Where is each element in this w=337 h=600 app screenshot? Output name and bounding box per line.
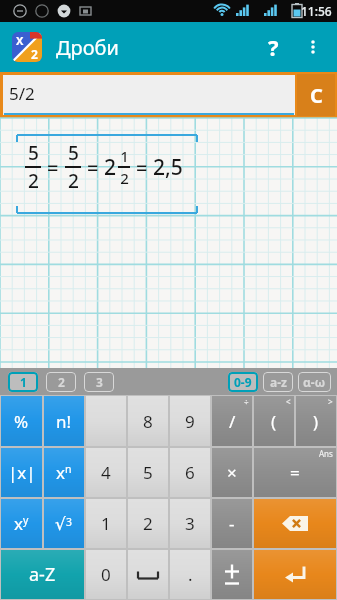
staticText: = xyxy=(87,154,99,181)
staticText: 5 xyxy=(68,140,79,166)
button[interactable]: = xyxy=(254,448,336,497)
button[interactable]: Plus minus xyxy=(212,550,252,599)
staticText: a-Z xyxy=(29,562,56,587)
staticText: ? xyxy=(268,32,279,62)
staticText: 2 xyxy=(28,168,39,194)
staticText: X xyxy=(16,33,24,48)
staticText: √ xyxy=(55,514,66,534)
button[interactable]: 1 xyxy=(86,499,126,548)
button[interactable]: 2 xyxy=(128,499,168,548)
staticText: 9 xyxy=(185,410,195,433)
button[interactable]: . xyxy=(170,550,210,599)
button[interactable]: 8 xyxy=(128,396,168,446)
button[interactable]: - xyxy=(212,499,252,548)
button[interactable] xyxy=(86,396,126,446)
button[interactable]: Backspace xyxy=(254,499,336,548)
staticText: ) xyxy=(313,410,319,433)
button[interactable]: 5/2 xyxy=(3,75,295,115)
button[interactable]: 6 xyxy=(170,448,210,497)
staticText: ( xyxy=(271,410,277,433)
staticText: 6 xyxy=(185,461,195,484)
staticText: % xyxy=(14,410,29,433)
staticText: 2 xyxy=(68,168,79,194)
staticText: 2 xyxy=(31,46,38,62)
staticText: × xyxy=(227,461,237,484)
button[interactable]: 2 xyxy=(46,372,76,392)
button[interactable]: / xyxy=(212,396,252,446)
button[interactable]: 0-9 xyxy=(228,372,258,392)
button[interactable]: Help xyxy=(253,27,293,67)
staticText: / xyxy=(229,410,236,433)
staticText: 0-9 xyxy=(234,374,252,390)
staticText: a-z xyxy=(270,374,287,390)
staticText: 5/2 xyxy=(9,82,35,105)
staticText: ÷ xyxy=(244,396,249,407)
staticText: = xyxy=(290,461,300,484)
button[interactable]: C xyxy=(297,74,335,116)
button[interactable]: Enter xyxy=(254,550,336,599)
button[interactable]: × xyxy=(212,448,252,497)
staticText: α-ω xyxy=(303,374,326,390)
staticText: 2,5 xyxy=(153,153,183,182)
staticText: 3 xyxy=(185,512,195,535)
button[interactable]: Space xyxy=(128,550,168,599)
staticText: x xyxy=(14,512,23,535)
staticText: 2 xyxy=(104,153,117,182)
staticText: = xyxy=(136,154,148,181)
staticText: > xyxy=(328,396,333,407)
staticText: 5 xyxy=(143,461,153,484)
staticText: C xyxy=(310,82,323,109)
staticText: 2 xyxy=(143,512,153,535)
staticText: < xyxy=(286,396,291,407)
staticText: 3 xyxy=(66,515,73,529)
staticText: 2 xyxy=(120,168,129,188)
button[interactable]: n! xyxy=(44,396,84,446)
button[interactable]: 1 xyxy=(8,372,38,392)
staticText: 1 xyxy=(120,146,129,166)
button[interactable]: x xyxy=(44,448,84,497)
button[interactable]: α-ω xyxy=(298,372,331,392)
staticText: Дроби xyxy=(56,34,119,61)
staticText: 5 xyxy=(28,140,39,166)
button[interactable]: 9 xyxy=(170,396,210,446)
button[interactable]: More options xyxy=(293,27,333,67)
button[interactable]: 3 xyxy=(84,372,114,392)
staticText: n xyxy=(65,462,72,476)
button[interactable]: a-z xyxy=(263,372,293,392)
staticText: x xyxy=(56,461,65,484)
button[interactable]: 0 xyxy=(86,550,126,599)
staticText: . xyxy=(188,563,193,586)
staticText: 1 xyxy=(20,374,27,390)
staticText: 1 xyxy=(101,512,111,535)
staticText: 11:56 xyxy=(301,3,332,19)
staticText: y xyxy=(23,513,29,527)
staticText: 2 xyxy=(58,374,65,390)
staticText: |x| xyxy=(8,461,36,484)
staticText: 3 xyxy=(96,374,103,390)
button[interactable]: a-Z xyxy=(1,550,84,599)
staticText: 0 xyxy=(101,563,111,586)
staticText: 4 xyxy=(101,461,111,484)
button[interactable]: |x| xyxy=(1,448,42,497)
button[interactable]: 5 xyxy=(128,448,168,497)
staticText: = xyxy=(47,154,59,181)
staticText: - xyxy=(229,512,235,535)
button[interactable]: √ xyxy=(44,499,84,548)
button[interactable]: x xyxy=(1,499,42,548)
staticText: Ans xyxy=(319,448,333,459)
button[interactable]: 4 xyxy=(86,448,126,497)
staticText: 8 xyxy=(143,410,153,433)
button[interactable]: ) xyxy=(296,396,336,446)
button[interactable]: % xyxy=(1,396,42,446)
button[interactable]: 3 xyxy=(170,499,210,548)
button[interactable]: ( xyxy=(254,396,294,446)
staticText: n! xyxy=(56,410,72,433)
